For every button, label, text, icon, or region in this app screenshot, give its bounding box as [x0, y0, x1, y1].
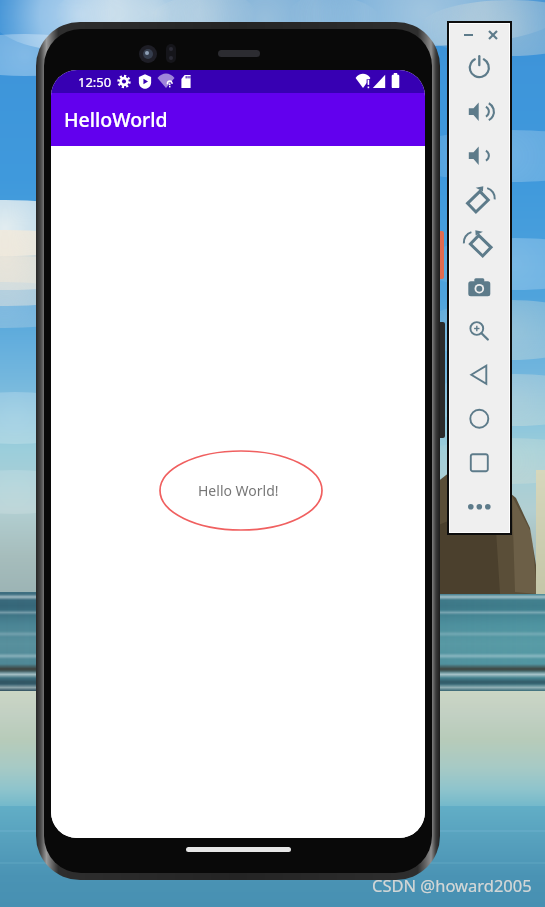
- button[interactable]: Zoom: [470, 319, 488, 337]
- button[interactable]: Minimize: [459, 26, 477, 44]
- button[interactable]: More: [470, 495, 488, 513]
- button[interactable]: Home: [470, 407, 488, 425]
- staticText: CSDN @howard2005: [372, 874, 532, 896]
- button[interactable]: Volume down: [470, 144, 488, 162]
- button[interactable]: Volume up: [470, 100, 488, 118]
- button[interactable]: Power: [470, 56, 488, 74]
- button[interactable]: Rotate right: [470, 232, 488, 250]
- button[interactable]: Take screenshot: [470, 276, 488, 294]
- button[interactable]: Close: [484, 26, 502, 44]
- staticText: HelloWorld: [64, 106, 168, 133]
- button[interactable]: Rotate left: [470, 188, 488, 206]
- staticText: 12:50: [78, 73, 112, 91]
- button[interactable]: Overview: [470, 451, 488, 469]
- button[interactable]: Back: [470, 363, 488, 381]
- staticText: Hello World!: [198, 481, 279, 500]
